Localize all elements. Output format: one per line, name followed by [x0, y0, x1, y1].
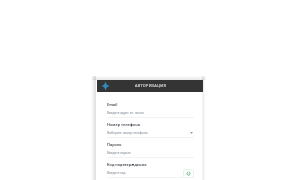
- staticText: Номер телефона: [107, 122, 140, 127]
- staticText: Email: [107, 102, 118, 107]
- staticText: Пароль: [107, 142, 122, 147]
- button[interactable]: Код подтверждения: [107, 162, 147, 167]
- staticText: Введите пароль: [107, 151, 131, 155]
- staticText: АВТОРИЗАЦИЯ: [135, 83, 167, 88]
- staticText: Выберите номер телефона: [107, 131, 148, 135]
- button[interactable]: Номер телефона: [107, 122, 140, 127]
- staticText: Введите адрес эл. почты: [107, 111, 144, 115]
- staticText: Код подтверждения: [107, 162, 147, 167]
- staticText: Введите код: [107, 171, 126, 175]
- other: Открыть список: [190, 132, 193, 134]
- button[interactable]: Логотип: [97, 80, 203, 92]
- button[interactable]: Обновить код: [183, 169, 194, 178]
- button[interactable]: Пароль: [107, 142, 122, 147]
- button[interactable]: Email: [107, 102, 118, 107]
- other: Логотип: [101, 81, 110, 91]
